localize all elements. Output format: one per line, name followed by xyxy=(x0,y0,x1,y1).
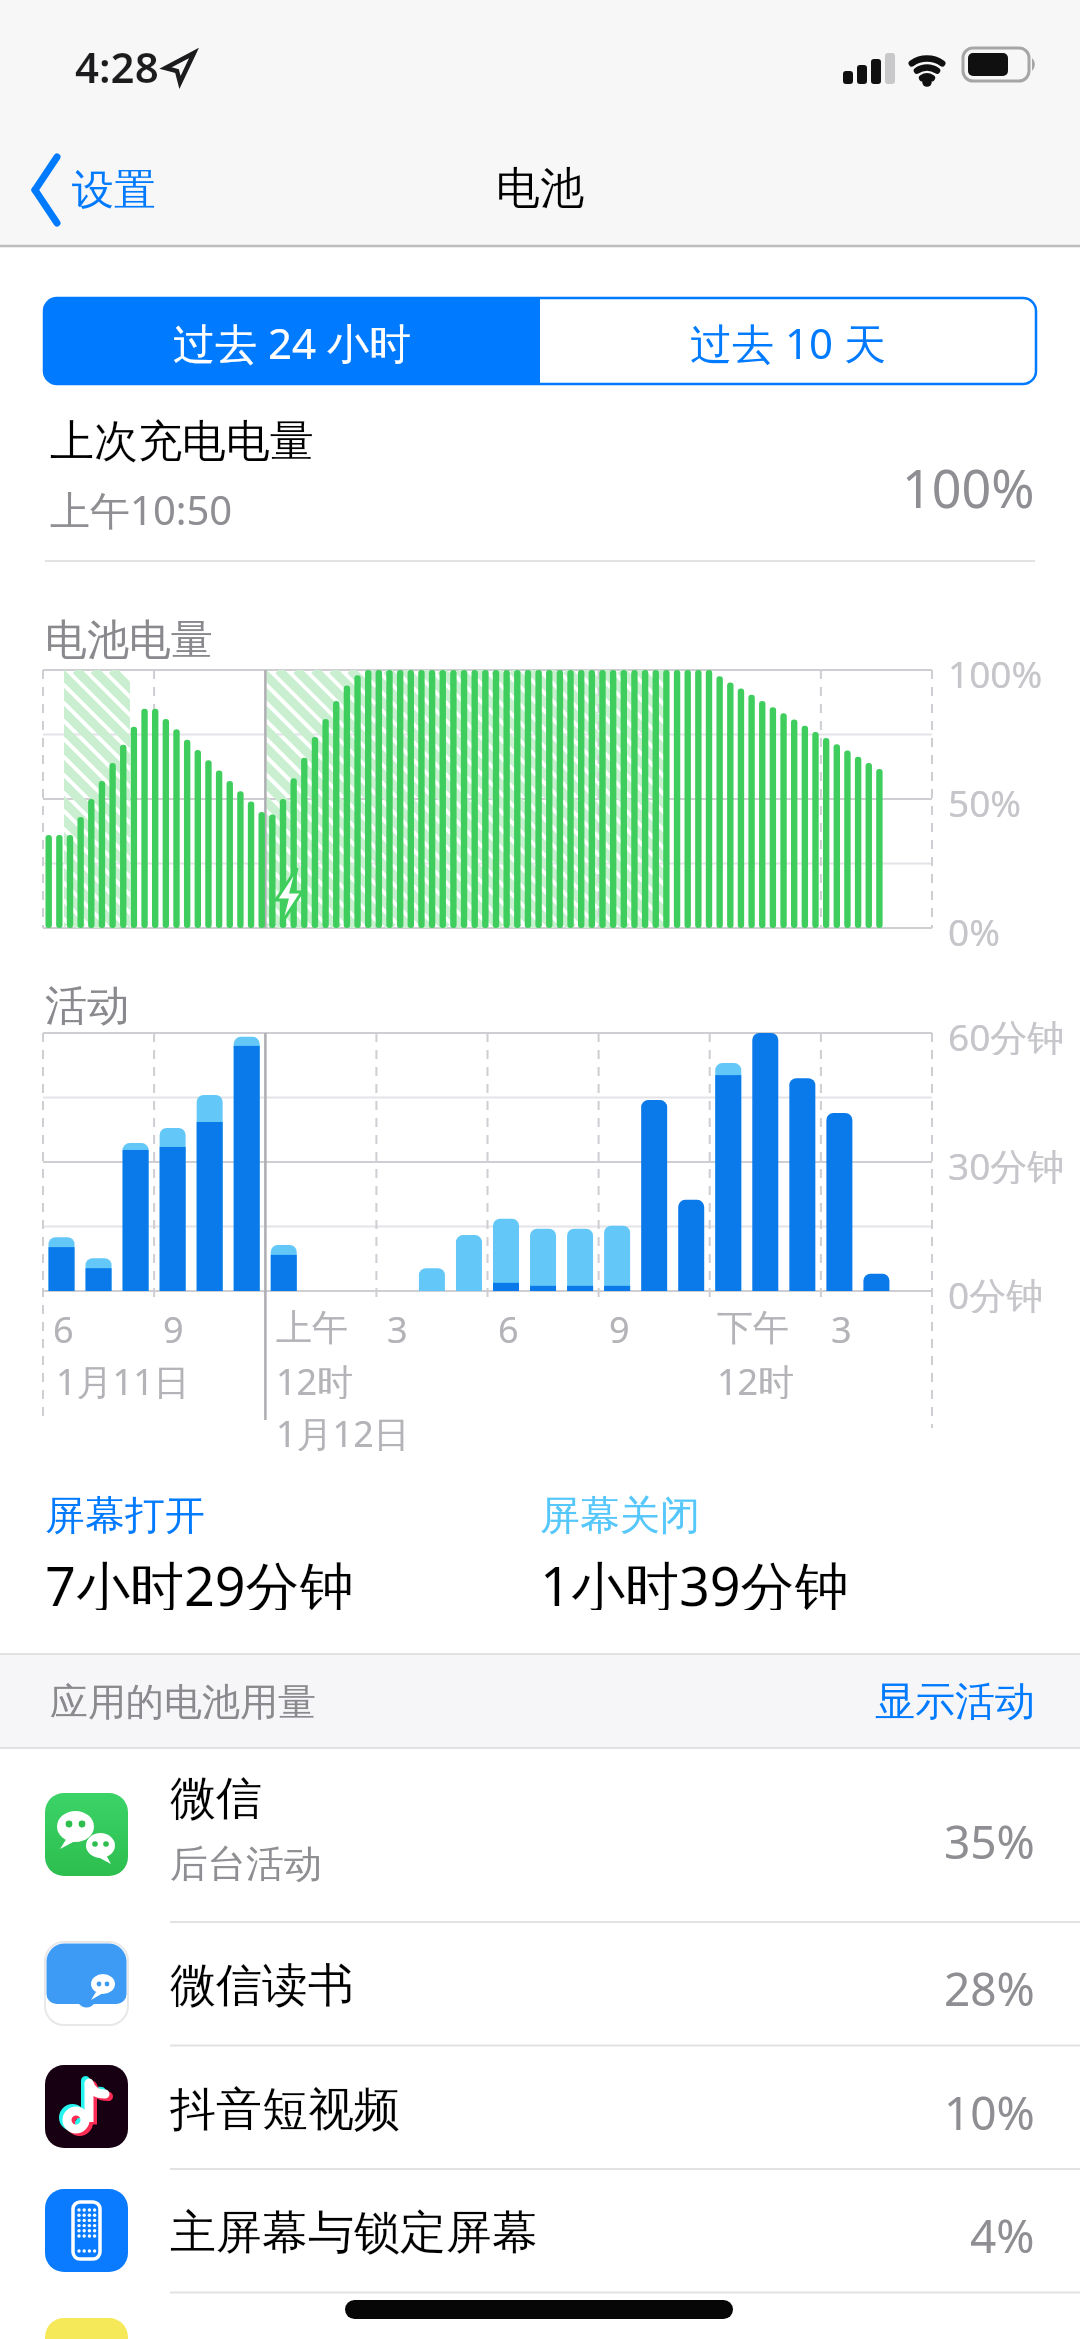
button[interactable] xyxy=(860,1660,1060,1744)
staticText: 3 xyxy=(387,1305,408,1347)
staticText: 9 xyxy=(163,1305,184,1347)
staticText: 100% xyxy=(902,452,1035,514)
staticText: 微信 xyxy=(170,1770,262,1824)
button[interactable] xyxy=(0,1922,1080,2046)
staticText: 28% xyxy=(944,1957,1035,2011)
staticText: 电池电量 xyxy=(45,614,213,666)
staticText: 12时 xyxy=(717,1357,795,1399)
staticText: 35% xyxy=(944,1810,1035,1864)
staticText: 应用的电池用量 xyxy=(50,1678,316,1724)
staticText: 4:28 xyxy=(75,38,159,90)
button[interactable] xyxy=(0,1748,1080,1922)
button[interactable] xyxy=(0,2046,1080,2169)
button[interactable] xyxy=(10,140,210,240)
staticText: 50% xyxy=(948,777,1022,821)
staticText: 7小时29分钟 xyxy=(45,1548,354,1610)
button[interactable] xyxy=(0,2169,1080,2293)
staticText: 主屏幕与锁定屏幕 xyxy=(170,2204,538,2258)
staticText: 过去 24 小时 xyxy=(173,314,411,371)
staticText: 显示活动 xyxy=(875,1676,1035,1724)
staticText: 过去 10 天 xyxy=(690,314,886,371)
staticText: 电池 xyxy=(496,161,584,216)
staticText: 屏幕关闭 xyxy=(540,1490,700,1538)
staticText: 上午10:50 xyxy=(50,482,233,532)
staticText: 上午 xyxy=(276,1305,348,1347)
staticText: 抖音短视频 xyxy=(170,2081,400,2135)
staticText: 3 xyxy=(831,1305,852,1347)
staticText: 下午 xyxy=(717,1305,789,1347)
staticText: 1月11日 xyxy=(56,1357,190,1399)
staticText: 60分钟 xyxy=(948,1011,1065,1055)
staticText: 上次充电电量 xyxy=(50,414,314,468)
staticText: 屏幕打开 xyxy=(45,1490,205,1538)
staticText: 100% xyxy=(948,648,1043,692)
staticText: 4% xyxy=(970,2204,1035,2258)
staticText: 6 xyxy=(53,1305,74,1347)
staticText: 设置 xyxy=(72,164,156,217)
staticText: 9 xyxy=(609,1305,630,1347)
staticText: 后台活动 xyxy=(170,1840,322,1886)
staticText: 30分钟 xyxy=(948,1140,1065,1184)
staticText: 12时 xyxy=(276,1357,354,1399)
staticText: 6 xyxy=(498,1305,519,1347)
staticText: 微信读书 xyxy=(170,1957,354,2011)
staticText: 0% xyxy=(948,906,1000,950)
staticText: 0分钟 xyxy=(948,1269,1044,1313)
staticText: 1月12日 xyxy=(276,1409,410,1451)
staticText: 10% xyxy=(944,2081,1035,2135)
button[interactable] xyxy=(540,298,1036,384)
staticText: 活动 xyxy=(45,980,129,1032)
staticText: 1小时39分钟 xyxy=(540,1548,849,1610)
button[interactable] xyxy=(44,298,540,384)
